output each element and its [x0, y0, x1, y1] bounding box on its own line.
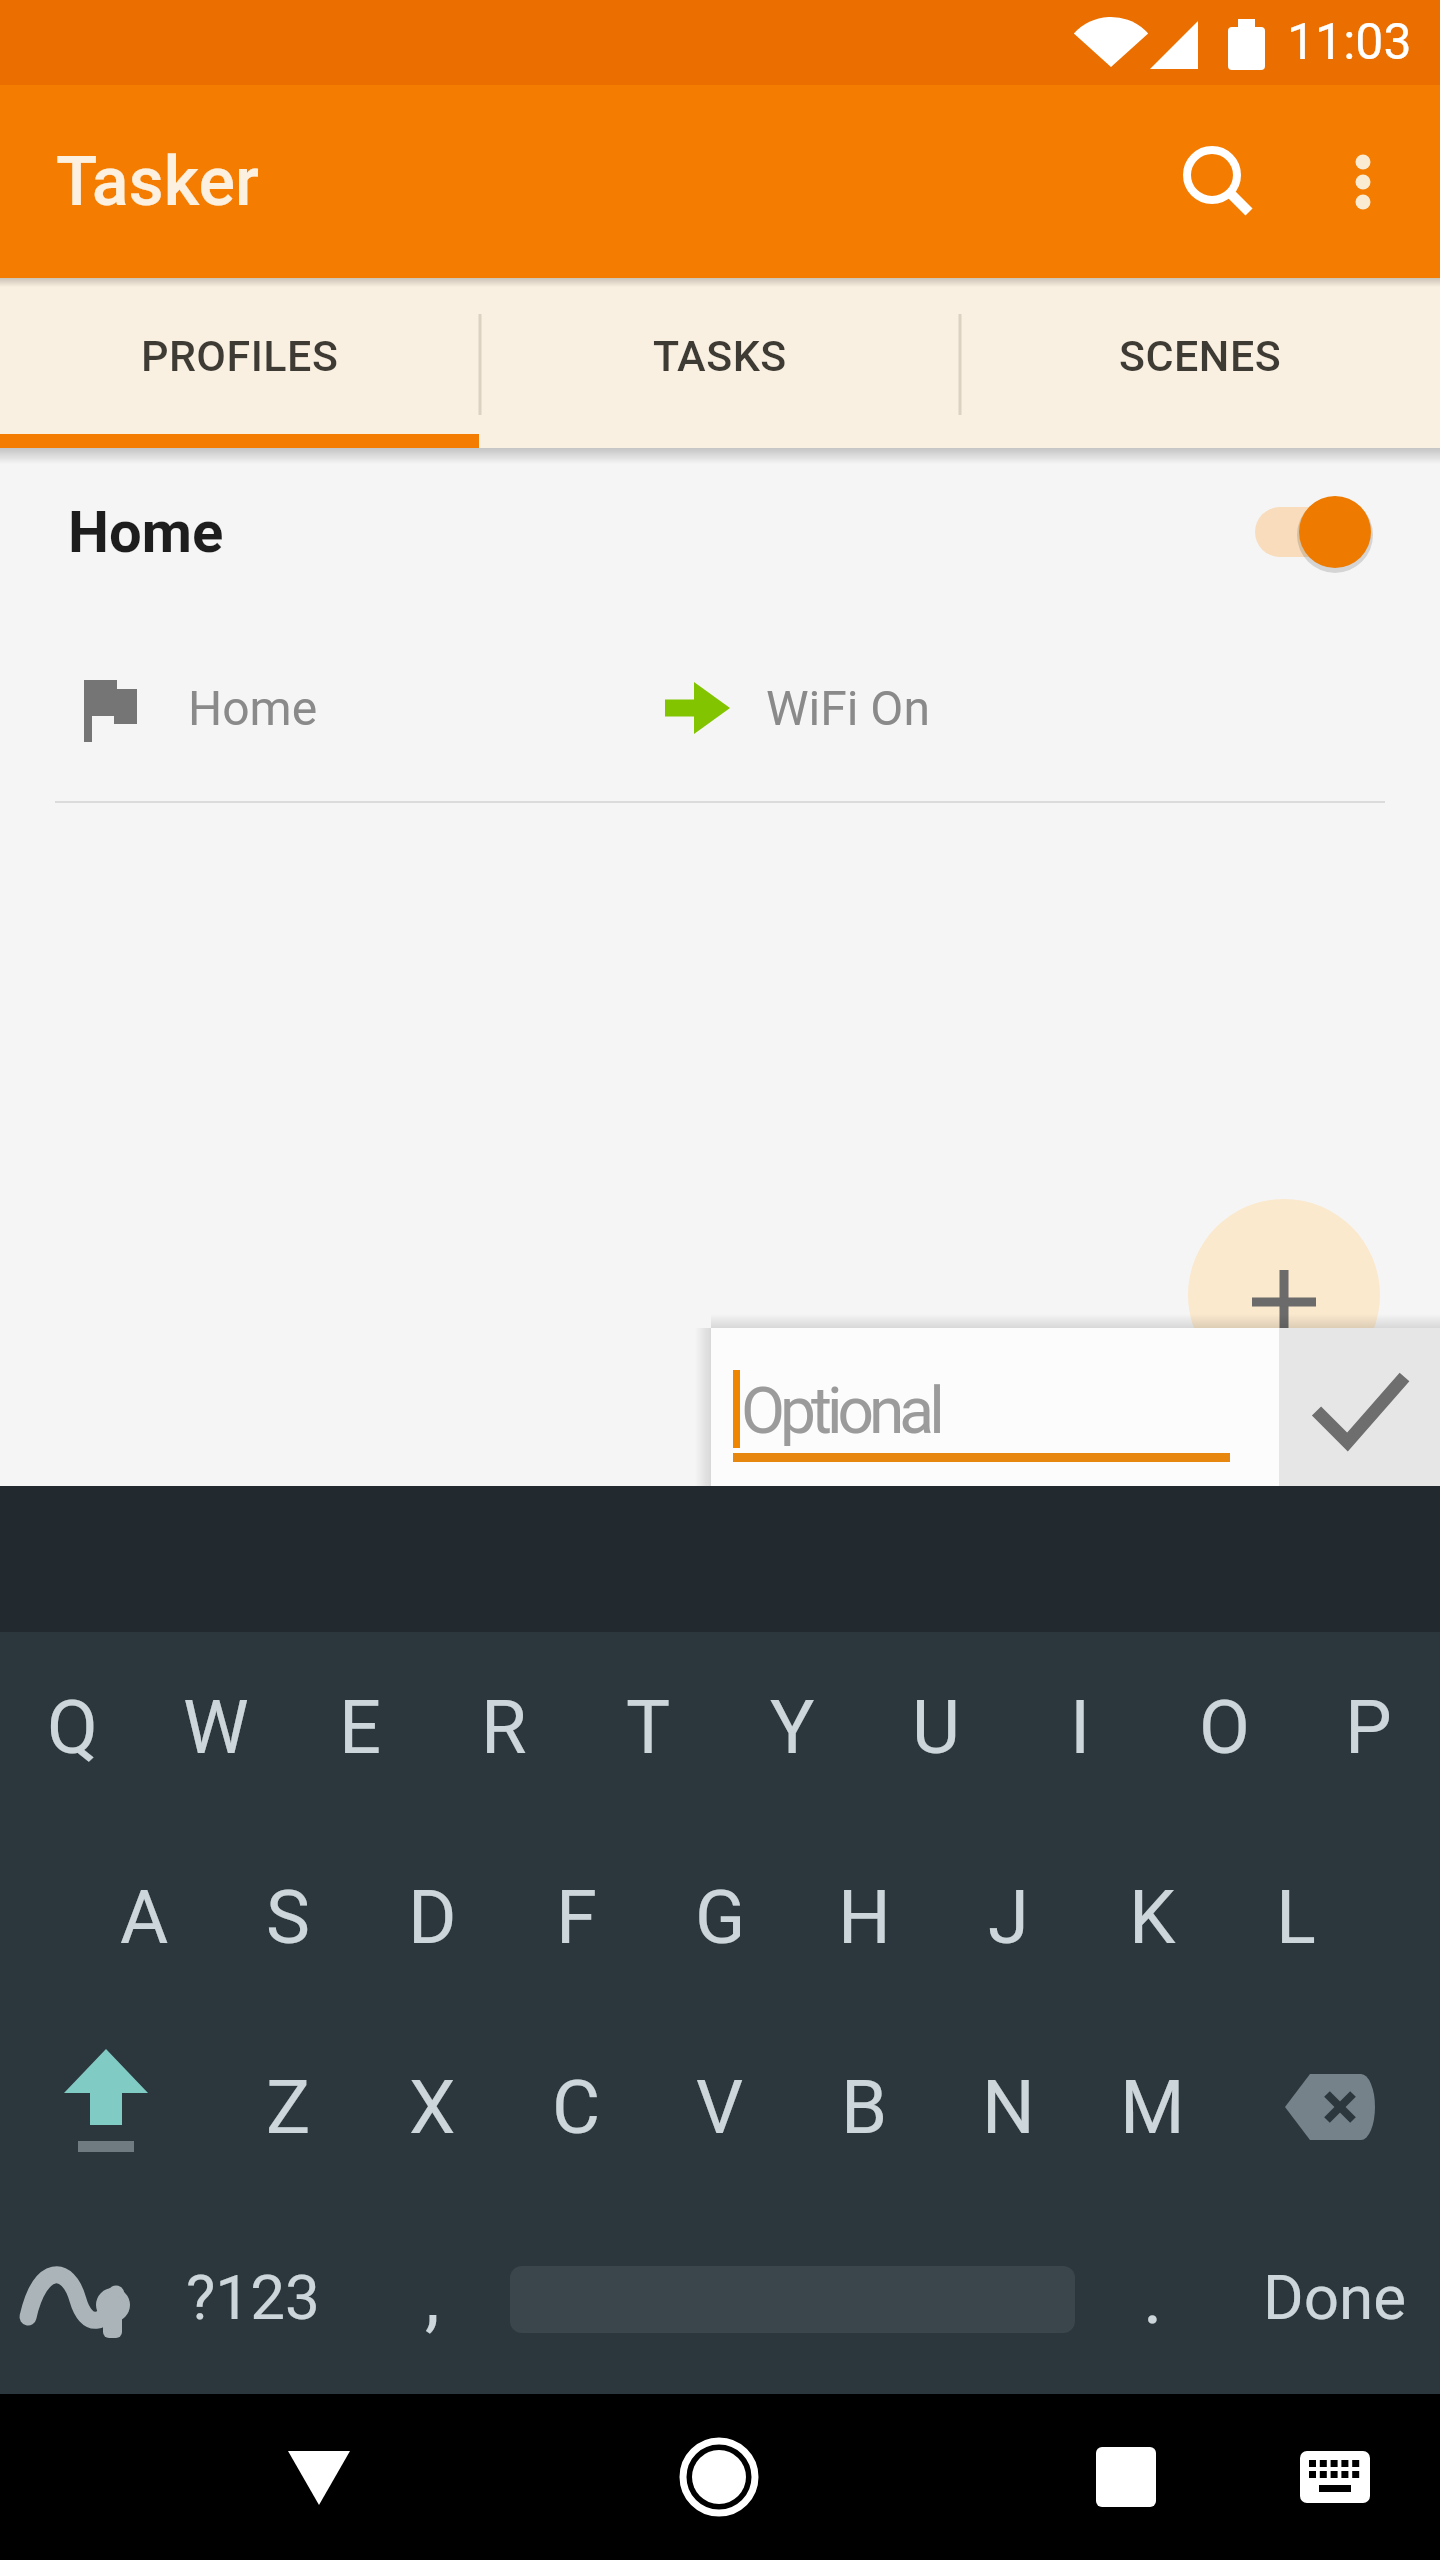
staticText: ?123	[186, 2261, 320, 2334]
staticText: J	[988, 1874, 1029, 1961]
button[interactable]: .	[1115, 2202, 1190, 2392]
button[interactable]: Q	[0, 1632, 144, 1822]
button[interactable]: Done	[1245, 2202, 1425, 2392]
button[interactable]: N	[936, 2012, 1080, 2202]
button[interactable]: Y	[720, 1632, 864, 1822]
staticText: Z	[266, 2064, 311, 2151]
staticText: Home	[68, 498, 224, 566]
button[interactable]: M	[1080, 2012, 1224, 2202]
staticText: P	[1345, 1684, 1392, 1771]
staticText: U	[912, 1684, 960, 1771]
staticText: O	[1199, 1684, 1250, 1771]
staticText: D	[408, 1874, 457, 1961]
staticText: I	[1070, 1684, 1091, 1771]
staticText: G	[695, 1874, 746, 1961]
staticText: PROFILES	[141, 331, 339, 381]
staticText: W	[183, 1684, 249, 1771]
button[interactable]: V	[648, 2012, 792, 2202]
staticText: S	[266, 1874, 310, 1961]
button[interactable]: C	[504, 2012, 648, 2202]
staticText: C	[552, 2064, 601, 2151]
button[interactable]: E	[288, 1632, 432, 1822]
button[interactable]: O	[1152, 1632, 1296, 1822]
staticText: TASKS	[653, 331, 787, 381]
staticText: .	[1143, 2254, 1163, 2341]
staticText: K	[1129, 1874, 1176, 1961]
staticText: Q	[47, 1684, 98, 1771]
staticText: Home	[188, 680, 318, 736]
button[interactable]: L	[1224, 1822, 1368, 2012]
staticText: V	[696, 2064, 744, 2151]
button[interactable]	[1315, 117, 1411, 245]
staticText: N	[982, 2064, 1035, 2151]
button[interactable]: G	[648, 1822, 792, 2012]
staticText: ,	[425, 2254, 440, 2341]
button[interactable]: Z	[216, 2012, 360, 2202]
staticText: SCENES	[1119, 331, 1282, 381]
button[interactable]	[1279, 1328, 1440, 1486]
staticText: L	[1276, 1874, 1316, 1961]
button[interactable]: D	[360, 1822, 504, 2012]
button[interactable]: P	[1296, 1632, 1440, 1822]
button[interactable]	[1224, 2012, 1440, 2202]
staticText: T	[626, 1684, 671, 1771]
button[interactable]: Home	[0, 638, 1440, 778]
staticText: Y	[770, 1684, 815, 1771]
button[interactable]	[0, 2012, 216, 2202]
staticText: A	[120, 1874, 169, 1961]
button[interactable]: H	[792, 1822, 936, 2012]
button[interactable]: S	[216, 1822, 360, 2012]
staticText: X	[409, 2064, 456, 2151]
button[interactable]	[960, 2394, 1440, 2560]
button[interactable]: I	[1008, 1632, 1152, 1822]
button[interactable]: K	[1080, 1822, 1224, 2012]
button[interactable]: ,	[395, 2202, 470, 2392]
button[interactable]: X	[360, 2012, 504, 2202]
staticText: Done	[1263, 2261, 1407, 2334]
button[interactable]: Home	[0, 482, 1440, 582]
button[interactable]: R	[432, 1632, 576, 1822]
button[interactable]: J	[936, 1822, 1080, 2012]
staticText: Tasker	[56, 142, 259, 222]
button[interactable]: U	[864, 1632, 1008, 1822]
button[interactable]: F	[504, 1822, 648, 2012]
button[interactable]: T	[576, 1632, 720, 1822]
button[interactable]	[1150, 117, 1278, 245]
staticText: E	[339, 1684, 382, 1771]
button[interactable]: A	[72, 1822, 216, 2012]
staticText: WiFi On	[766, 680, 930, 736]
staticText: 11:03	[1287, 13, 1412, 72]
button[interactable]: B	[792, 2012, 936, 2202]
staticText: Optional	[741, 1374, 940, 1449]
staticText: R	[481, 1684, 527, 1771]
button[interactable]: PROFILES	[0, 271, 480, 441]
button[interactable]: SCENES	[960, 271, 1440, 441]
staticText: H	[838, 1874, 891, 1961]
staticText: B	[841, 2064, 888, 2151]
staticText: M	[1120, 2064, 1185, 2151]
button[interactable]: ?123	[185, 2202, 321, 2392]
button[interactable]	[1188, 1199, 1380, 1391]
staticText: F	[556, 1874, 597, 1961]
button[interactable]	[0, 2394, 480, 2560]
button[interactable]: TASKS	[480, 271, 960, 441]
button[interactable]: W	[144, 1632, 288, 1822]
button[interactable]	[480, 2394, 960, 2560]
